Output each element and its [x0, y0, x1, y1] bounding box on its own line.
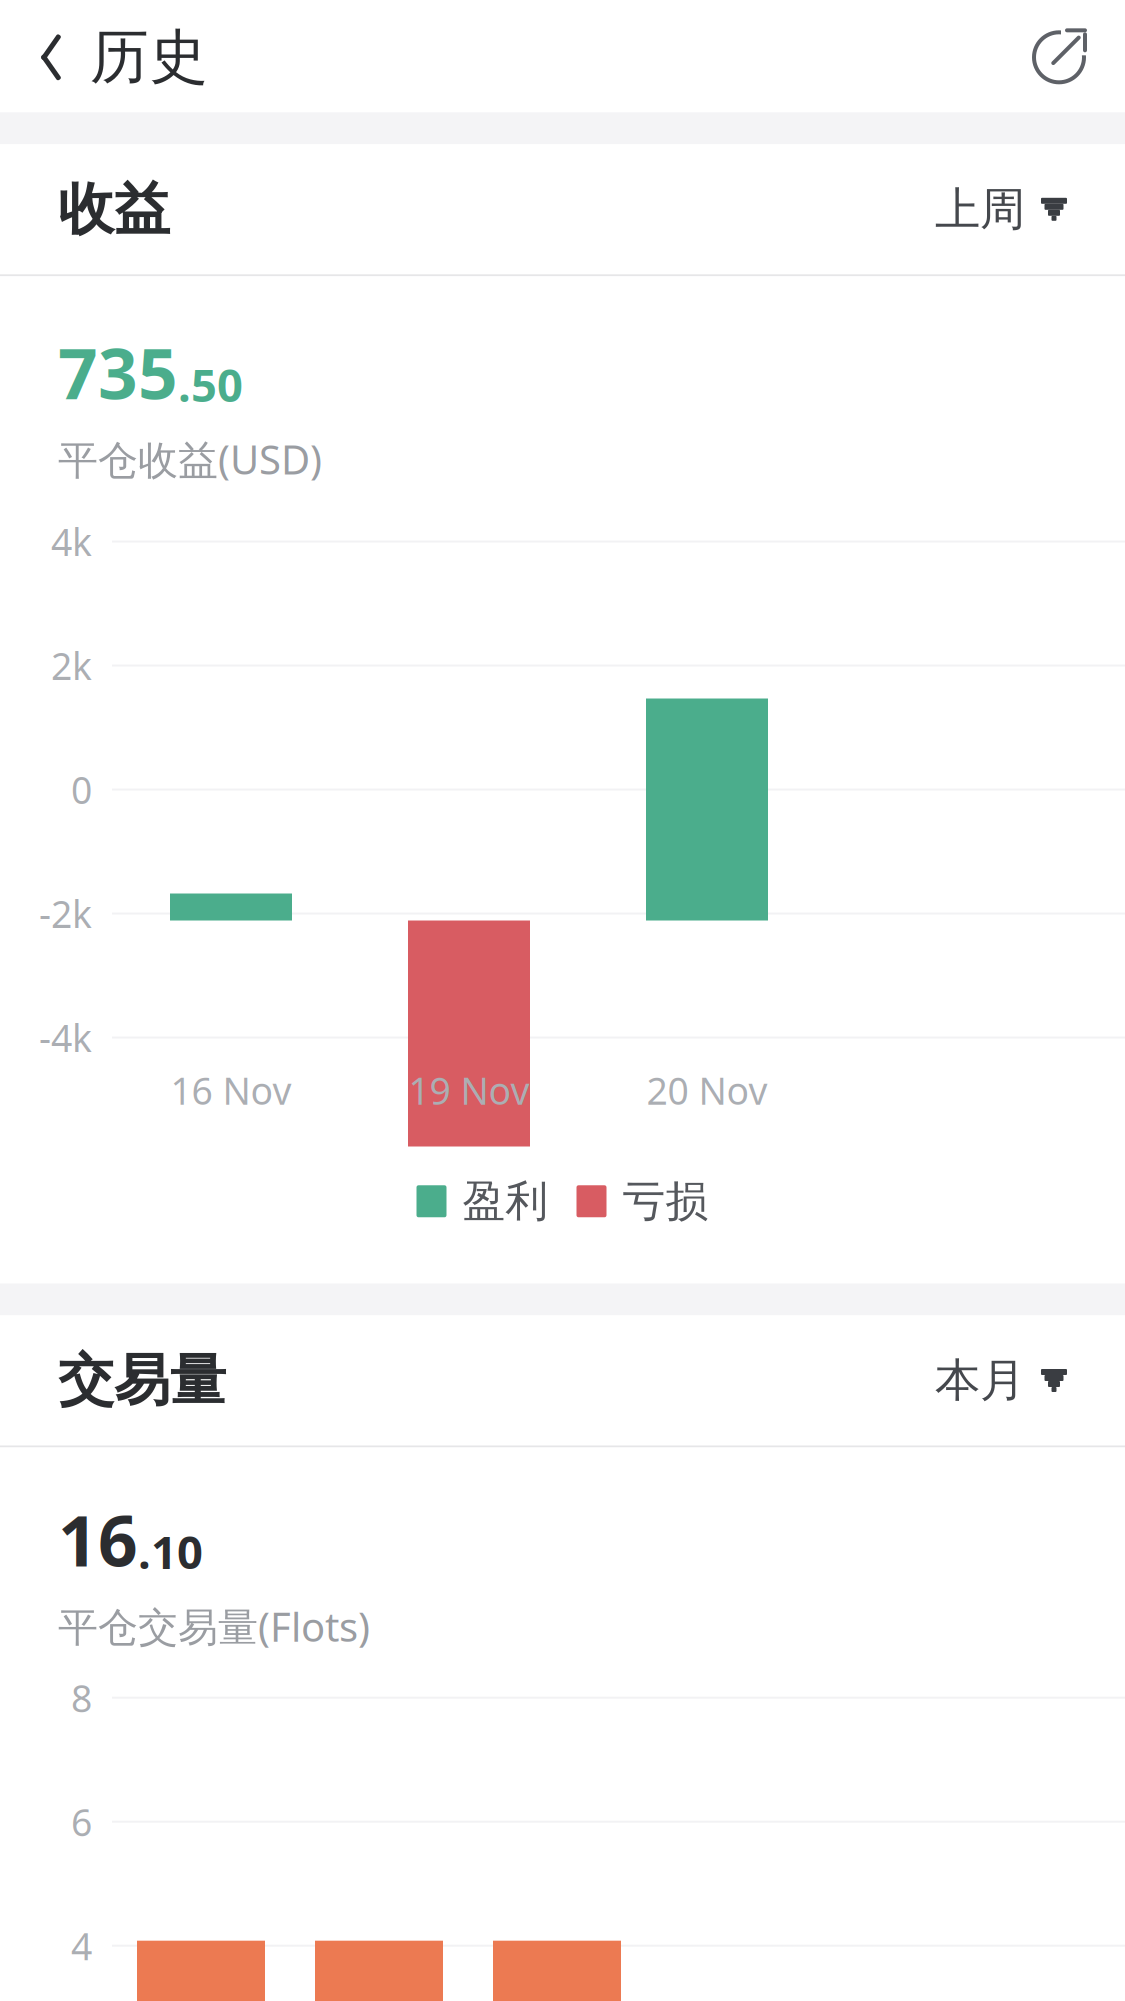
staticText: 盈利 — [462, 1175, 548, 1227]
staticText: 20 Nov — [646, 1065, 767, 1115]
button[interactable]: 本月 — [905, 1331, 1067, 1430]
button[interactable]: 上周 — [905, 159, 1067, 259]
staticText: .50 — [178, 354, 243, 414]
button[interactable]: 历史 — [90, 0, 228, 117]
staticText: 平仓交易量(Flots) — [58, 1600, 370, 1653]
staticText: 4 — [71, 1921, 92, 1970]
button[interactable]: 分享 — [1005, 2, 1113, 112]
staticText: -2k — [39, 889, 92, 938]
staticText: 上周 — [935, 181, 1025, 237]
staticText: 6 — [71, 1797, 92, 1846]
staticText: 亏损 — [622, 1175, 708, 1227]
staticText: 16 Nov — [170, 1065, 291, 1115]
staticText: 8 — [71, 1673, 92, 1722]
staticText: 0 — [71, 765, 92, 814]
staticText: 735 — [58, 326, 178, 418]
staticText: 历史 — [90, 21, 208, 93]
staticText: 2k — [51, 641, 92, 690]
staticText: 19 Nov — [408, 1065, 529, 1115]
staticText: .10 — [138, 1521, 203, 1582]
staticText: -4k — [39, 1013, 92, 1062]
button[interactable]: 返回 — [12, 2, 90, 112]
staticText: 4k — [51, 517, 92, 566]
staticText: 16 — [58, 1493, 138, 1586]
staticText: 平仓收益(USD) — [58, 432, 322, 485]
staticText: 收益 — [58, 175, 170, 244]
staticText: 交易量 — [58, 1346, 226, 1415]
staticText: 本月 — [935, 1353, 1025, 1408]
